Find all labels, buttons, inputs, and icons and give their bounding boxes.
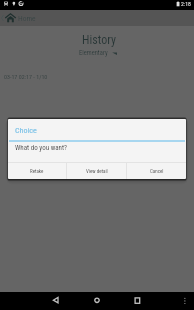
staticText: 03-17 02:17 - 1/10 <box>4 73 48 80</box>
button[interactable]: More options <box>178 294 192 308</box>
staticText: 2:18 <box>181 1 191 8</box>
button[interactable]: View detail <box>67 163 126 179</box>
staticText: What do you want? <box>15 144 68 152</box>
button[interactable]: Back <box>46 292 64 310</box>
staticText: Elementary <box>79 49 108 57</box>
staticText: View detail <box>86 168 108 174</box>
button[interactable]: Cancel <box>127 163 186 179</box>
button[interactable]: Elementary <box>79 48 117 57</box>
staticText: History <box>2 33 194 47</box>
button[interactable]: Retake <box>8 163 66 179</box>
button[interactable]: Recent apps <box>128 292 146 310</box>
button[interactable]: 03-17 02:17 - 1/10 <box>0 68 194 85</box>
staticText: Choice <box>15 126 37 135</box>
staticText: Retake <box>30 168 44 174</box>
button[interactable]: Home <box>0 10 194 26</box>
button[interactable]: Home <box>88 292 106 310</box>
staticText: Home <box>18 14 36 23</box>
staticText: Cancel <box>150 168 164 174</box>
